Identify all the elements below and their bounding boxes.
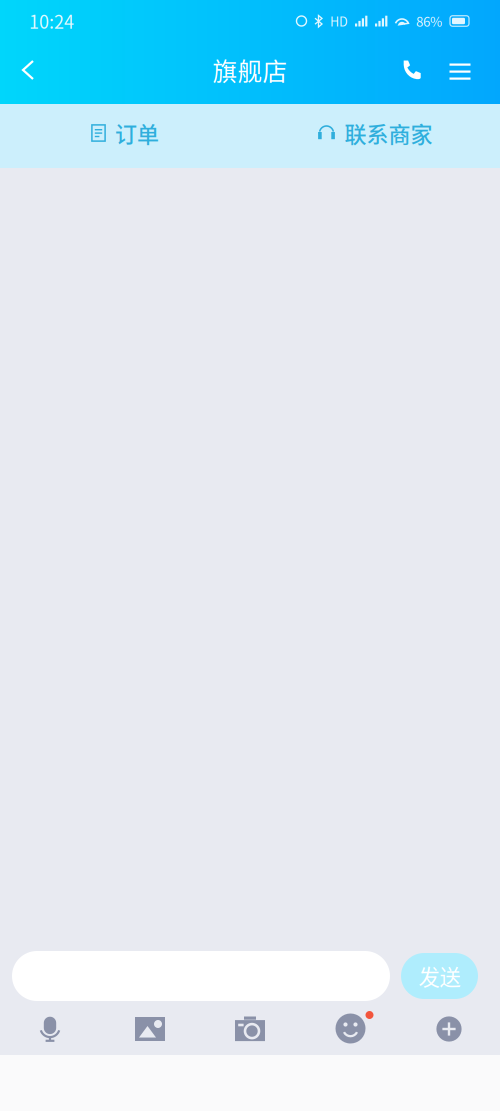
staticText: 86%	[416, 11, 442, 31]
staticText: 发送	[418, 961, 460, 991]
button[interactable]: 拨打电话	[388, 44, 436, 96]
button[interactable]: 更多	[436, 44, 484, 96]
button[interactable]: 更多功能	[400, 1003, 500, 1055]
staticText: 10:24	[29, 8, 74, 34]
button[interactable]: 语音	[0, 1003, 100, 1055]
button[interactable]: 输入消息	[12, 951, 390, 1001]
staticText: 订单	[115, 117, 159, 149]
button[interactable]: 联系商家	[250, 104, 500, 168]
button[interactable]: 相册	[100, 1003, 200, 1055]
button[interactable]: 返回	[6, 44, 52, 96]
staticText: HD	[330, 12, 348, 30]
button[interactable]: 订单	[0, 104, 250, 168]
button[interactable]: 表情	[300, 1003, 400, 1055]
staticText: 旗舰店	[212, 52, 287, 88]
button[interactable]: 拍照	[200, 1003, 300, 1055]
button[interactable]: 发送	[401, 953, 478, 999]
staticText: 联系商家	[344, 117, 432, 149]
